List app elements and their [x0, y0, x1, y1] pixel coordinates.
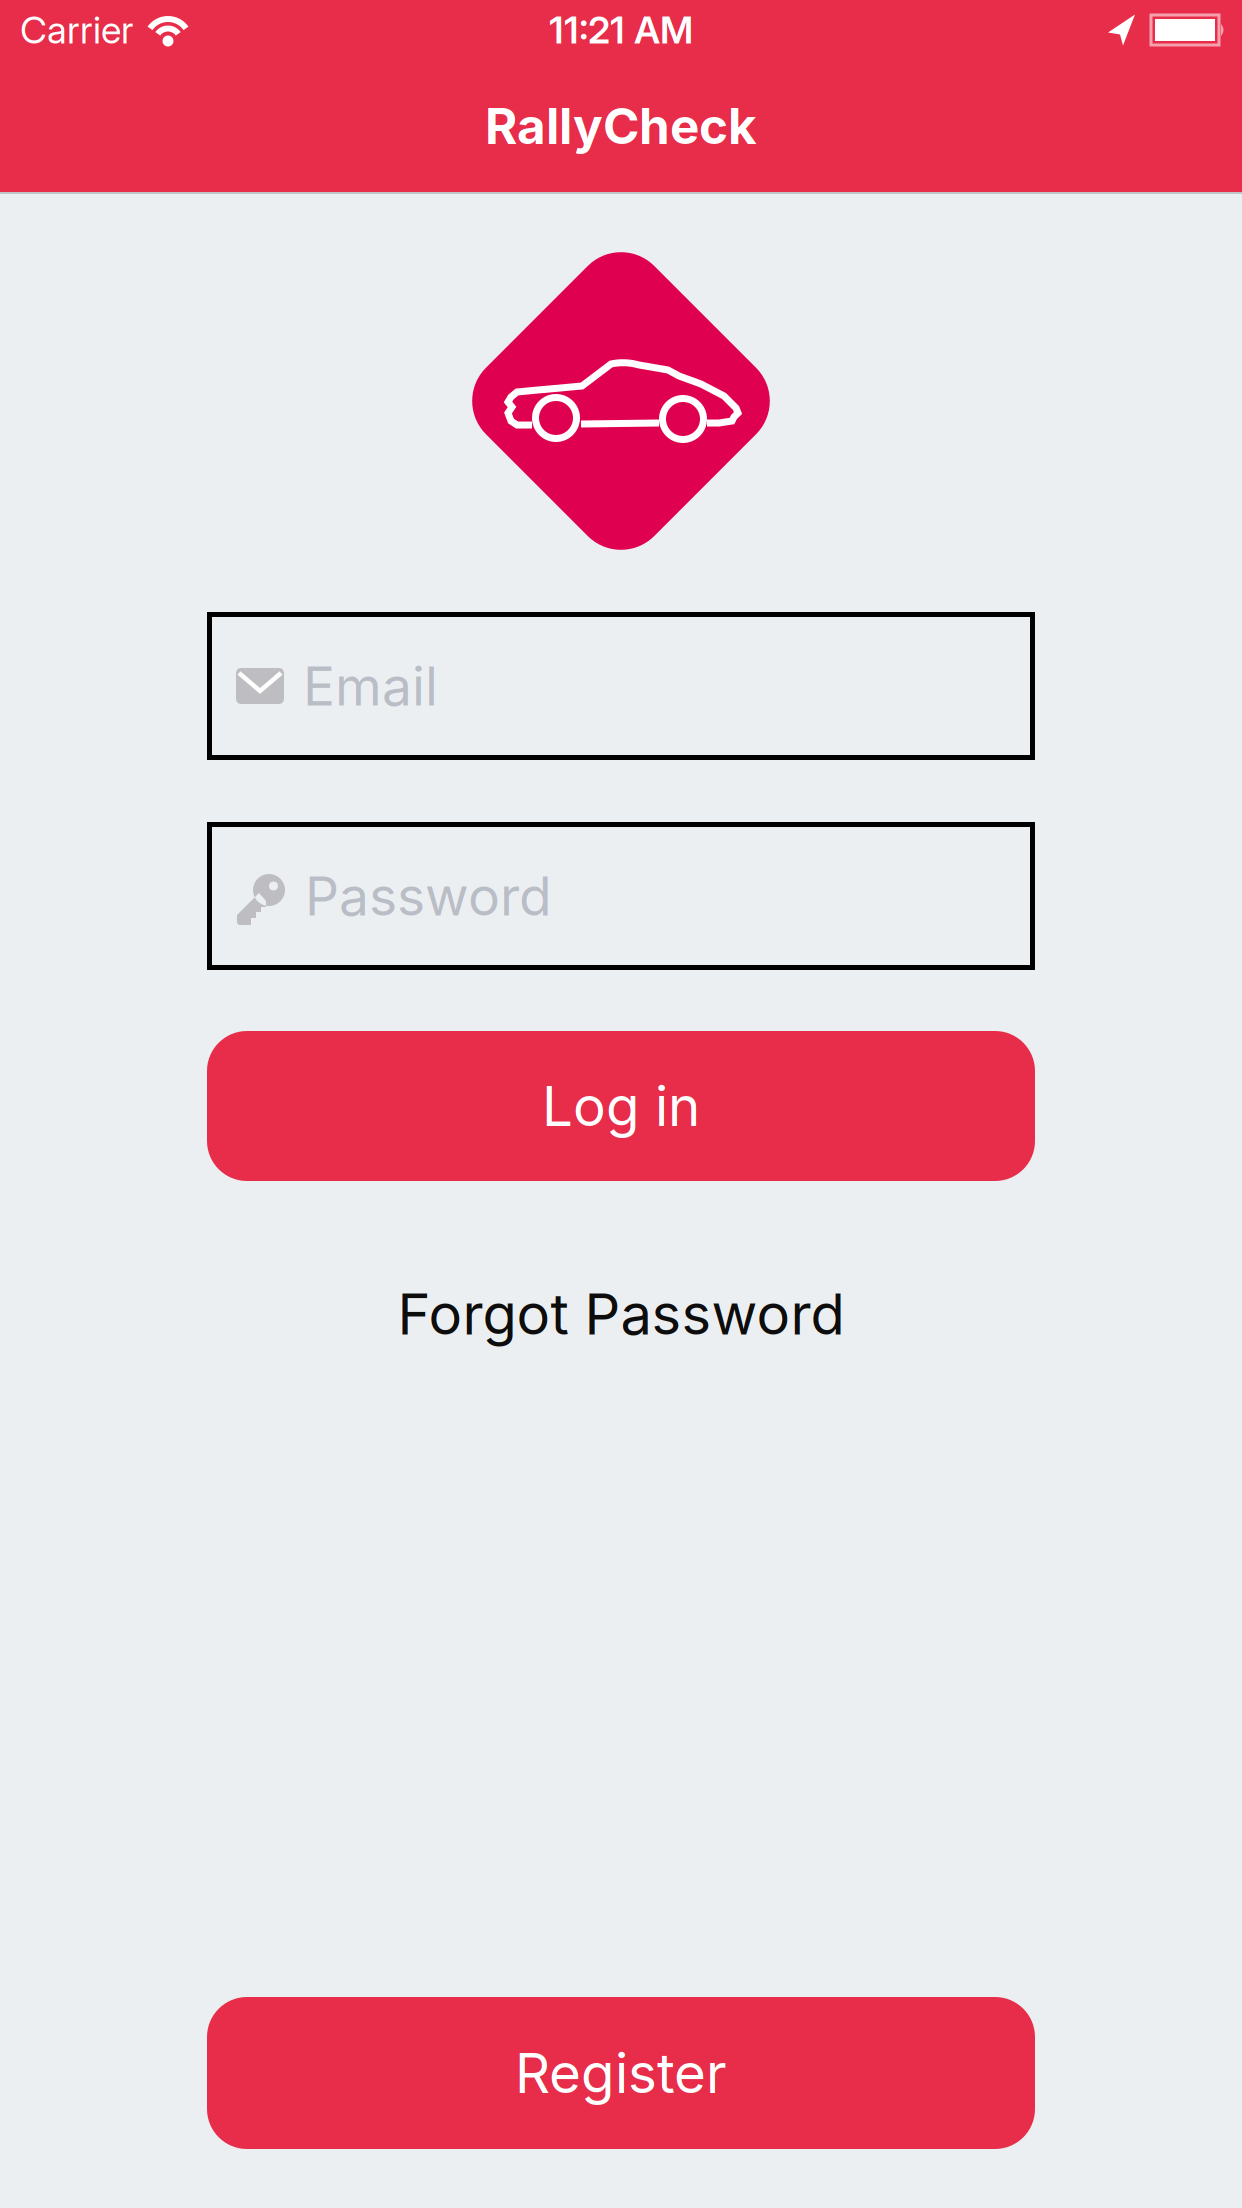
button[interactable]: Forgot Password	[397, 1281, 844, 1347]
button[interactable]: Email	[207, 612, 1035, 760]
staticText: Log in	[542, 1074, 700, 1138]
staticText: 11:21 AM	[549, 8, 693, 52]
button[interactable]: Log in	[207, 1031, 1035, 1181]
staticText: Register	[515, 2041, 727, 2105]
staticText: RallyCheck	[485, 97, 757, 155]
button[interactable]: Register	[207, 1997, 1035, 2149]
staticText: Forgot Password	[397, 1281, 844, 1347]
staticText: Carrier	[20, 8, 133, 52]
staticText: Email	[303, 654, 438, 717]
staticText: Password	[305, 864, 552, 927]
button[interactable]: Password	[207, 822, 1035, 970]
